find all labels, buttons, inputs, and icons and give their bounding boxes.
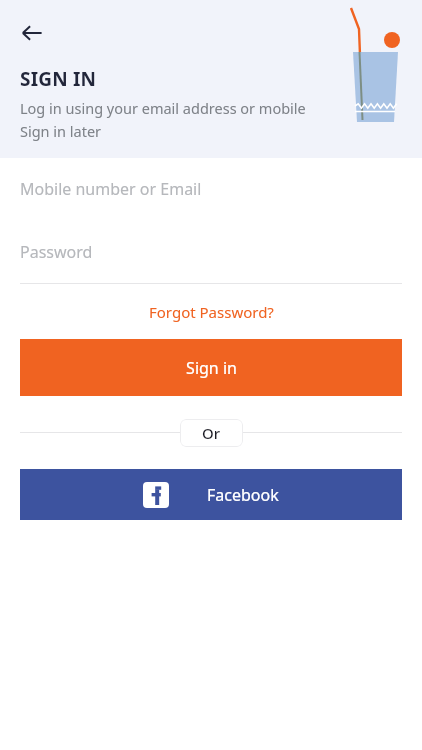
button[interactable]: Sign in later <box>20 121 102 141</box>
button[interactable]: Facebook <box>20 469 402 520</box>
staticText: Or <box>202 423 221 443</box>
staticText: Sign in <box>186 357 237 379</box>
button[interactable]: Mobile number or Email <box>0 158 422 220</box>
staticText: Password <box>20 241 93 263</box>
staticText: Forgot Password? <box>149 302 274 322</box>
button[interactable]: Forgot Password? <box>141 296 282 328</box>
button[interactable]: Sign in <box>20 339 402 396</box>
staticText: SIGN IN <box>20 66 97 92</box>
button[interactable]: Password <box>0 220 422 283</box>
staticText: Log in using your email address or mobil… <box>20 98 306 118</box>
button[interactable]: Back <box>12 13 52 53</box>
staticText: Facebook <box>207 484 279 506</box>
staticText: Mobile number or Email <box>20 178 202 200</box>
